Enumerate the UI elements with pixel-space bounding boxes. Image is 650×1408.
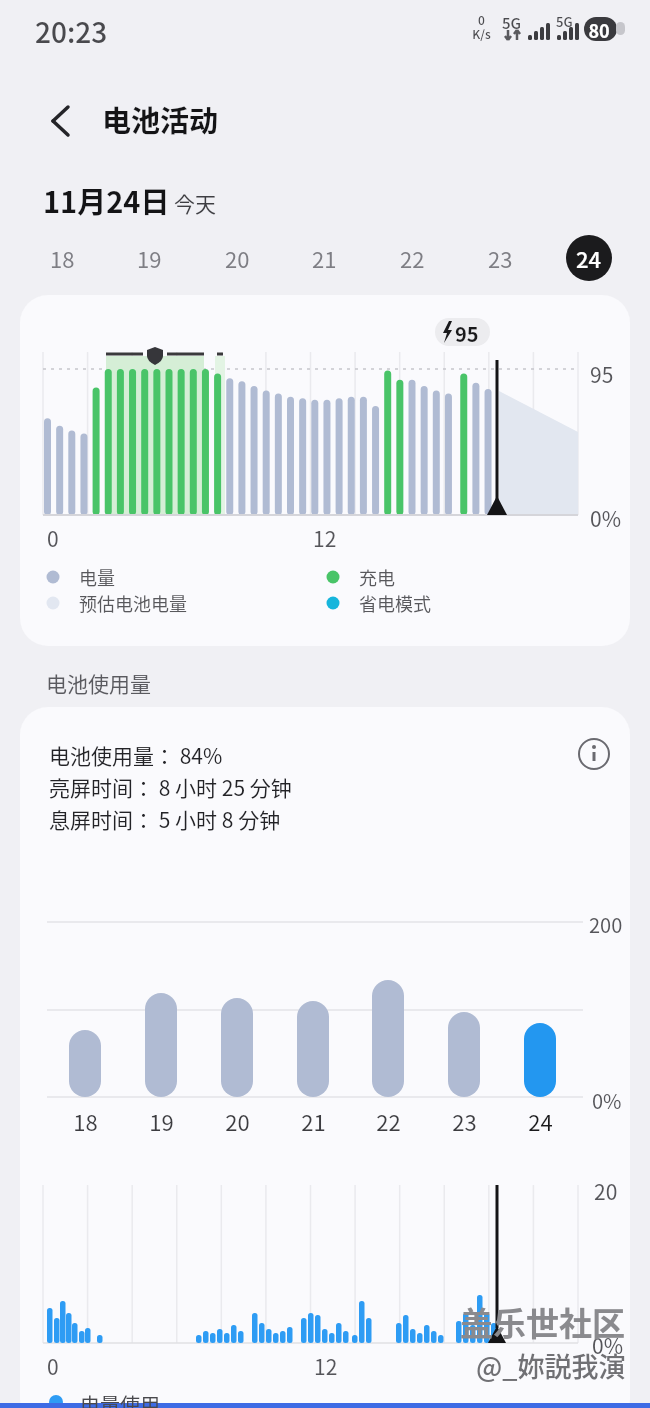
staticText: 22 <box>376 1105 401 1137</box>
staticText: 电量 <box>79 564 115 590</box>
staticText: 5G <box>556 12 573 31</box>
staticText: @_妳説我演 <box>476 1346 626 1385</box>
staticText: 0% <box>592 1330 623 1360</box>
staticText: 12 <box>314 1351 338 1381</box>
staticText: 20 <box>594 1176 618 1206</box>
staticText: 电池使用量 <box>46 668 151 698</box>
staticText: 省电模式 <box>359 590 431 616</box>
staticText: 95 <box>455 319 479 348</box>
staticText: 0% <box>592 1086 622 1115</box>
staticText: 充电 <box>359 564 395 590</box>
button[interactable]: 20 <box>209 234 265 282</box>
staticText: 电池使用量： 84% <box>49 740 223 770</box>
staticText: 0 <box>47 523 59 553</box>
staticText: 21 <box>312 242 337 274</box>
button[interactable] <box>38 96 86 144</box>
button[interactable]: 23 <box>472 234 528 282</box>
button[interactable] <box>572 732 616 776</box>
staticText: 20:23 <box>35 11 108 52</box>
button[interactable]: 22 <box>384 234 440 282</box>
staticText: 盖乐世社区 <box>460 1298 625 1346</box>
staticText: 20 <box>225 242 250 274</box>
staticText: 11月24日 <box>43 179 170 221</box>
staticText: 0% <box>590 503 621 533</box>
staticText: 200 <box>589 910 623 939</box>
staticText: 电量使用 <box>80 1390 160 1408</box>
staticText: 5G <box>502 12 522 34</box>
staticText: 23 <box>452 1105 477 1137</box>
staticText: 18 <box>50 242 75 274</box>
button[interactable]: 19 <box>121 234 177 282</box>
button[interactable]: 18 <box>34 234 90 282</box>
staticText: 19 <box>149 1105 174 1137</box>
staticText: 20 <box>225 1105 250 1137</box>
staticText: 19 <box>137 242 162 274</box>
button[interactable]: 24 <box>566 235 612 281</box>
staticText: 12 <box>313 523 337 553</box>
staticText: 今天 <box>174 188 216 218</box>
staticText: 23 <box>488 242 513 274</box>
staticText: 亮屏时间： 8 小时 25 分钟 <box>49 772 292 802</box>
staticText: 0 <box>47 1351 59 1381</box>
staticText: 18 <box>73 1105 98 1137</box>
staticText: 预估电池电量 <box>79 590 187 616</box>
staticText: 0 <box>478 11 485 28</box>
staticText: 24 <box>576 242 602 274</box>
button[interactable]: 21 <box>296 234 352 282</box>
staticText: 95 <box>590 359 614 389</box>
staticText: K/s <box>472 25 491 42</box>
staticText: 22 <box>400 242 425 274</box>
staticText: 21 <box>301 1105 326 1137</box>
staticText: 电池活动 <box>102 98 219 140</box>
staticText: 24 <box>528 1105 553 1137</box>
staticText: 息屏时间： 5 小时 8 分钟 <box>49 804 281 834</box>
staticText: 80 <box>588 17 610 43</box>
